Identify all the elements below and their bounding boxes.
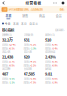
staticText: 日环比 <box>23 60 29 63</box>
staticText: 510 <box>45 37 51 43</box>
staticText: -1.1% <box>9 81 15 84</box>
staticText: 退货金额 <box>2 67 10 70</box>
staticText: 周同比 <box>2 81 8 84</box>
button[interactable]: Back <box>0 0 9 6</box>
staticText: 周同比 <box>2 47 8 50</box>
staticText: +7.3% <box>30 81 36 84</box>
button[interactable]: 会员 <box>50 13 67 20</box>
button[interactable]: 销售额(元) <box>2 33 22 50</box>
staticText: 进店人数 <box>2 50 10 53</box>
staticText: +2.2% <box>30 64 36 67</box>
staticText: 周同比 <box>2 64 8 67</box>
staticText: 复购率 <box>45 67 51 70</box>
staticText: +6.9% <box>52 43 58 46</box>
staticText: 周同比 <box>45 47 51 50</box>
staticText: 周同比 <box>23 64 29 67</box>
button[interactable]: 指标说明 › <box>55 28 65 32</box>
staticText: +5.2% <box>30 43 36 46</box>
button[interactable]: 会员总数 <box>23 67 43 84</box>
staticText: 经营看板 <box>25 0 41 6</box>
button[interactable]: 日报 <box>0 6 67 13</box>
staticText: 日环比 <box>45 77 51 80</box>
button[interactable]: 退货金额 <box>2 67 22 84</box>
staticText: 客单价(元) <box>45 33 55 36</box>
staticText: 9.81 <box>45 71 52 77</box>
staticText: +0.8% <box>52 64 58 67</box>
staticText: 销售 <box>22 14 28 18</box>
staticText: 会员 <box>56 14 62 18</box>
staticText: 47,585 <box>23 71 34 77</box>
staticText: +8.1% <box>9 47 15 50</box>
staticText: 日环比 <box>23 43 29 46</box>
staticText: 指标说明 › <box>55 28 65 32</box>
button[interactable]: 销售 <box>17 13 34 20</box>
staticText: 21,438 <box>2 54 13 60</box>
staticText: +9.5% <box>9 64 15 67</box>
staticText: 商品 <box>39 14 45 18</box>
staticText: +3.4% <box>52 47 58 50</box>
staticText: 631 <box>23 37 29 43</box>
button[interactable]: Close <box>59 0 67 6</box>
staticText: 周同比 <box>23 47 29 50</box>
staticText: 成交转化率 <box>45 50 55 53</box>
staticText: +1.9% <box>52 81 58 84</box>
button[interactable]: 成交人数 <box>23 50 43 67</box>
button[interactable]: 成交转化率 <box>45 50 65 67</box>
staticText: +1.8% <box>30 77 36 80</box>
staticText: 周同比 <box>23 81 29 84</box>
staticText: 今日 <box>5 22 11 25</box>
staticText: +2.7% <box>9 60 15 63</box>
staticText: 自定义 <box>29 22 38 25</box>
button[interactable]: 复购率 <box>45 67 65 84</box>
staticText: 9月7日经营数据已更新，点击查看详情 <box>8 8 42 11</box>
button[interactable]: 订单量(单) <box>23 33 43 50</box>
staticText: +0.6% <box>52 77 58 80</box>
staticText: 日环比 <box>45 43 51 46</box>
button[interactable]: 商品 <box>33 13 50 20</box>
staticText: 日报 <box>2 8 6 11</box>
staticText: 销售额(元) <box>2 33 12 36</box>
staticText: 订单量(单) <box>23 33 33 36</box>
staticText: 查看 › <box>59 8 65 11</box>
staticText: 日环比 <box>2 77 8 80</box>
button[interactable]: More <box>51 0 59 6</box>
staticText: 核心指标 <box>2 28 14 32</box>
staticText: 32.2万 <box>2 37 13 43</box>
staticText: +4.1% <box>30 60 36 63</box>
staticText: 487 <box>2 71 8 77</box>
staticText: 日环比 <box>2 60 8 63</box>
staticText: +12.4% <box>9 43 16 46</box>
staticText: 成交人数 <box>23 50 31 53</box>
staticText: 总览 <box>5 14 11 18</box>
staticText: 日环比 <box>45 60 51 63</box>
staticText: 本周 <box>13 22 19 25</box>
button[interactable]: 总览 <box>0 13 17 20</box>
button[interactable]: 客单价(元) <box>45 33 65 50</box>
staticText: 本月 <box>21 22 27 25</box>
staticText: 周同比 <box>45 81 51 84</box>
staticText: +0.3% <box>52 60 58 63</box>
staticText: 日环比 <box>23 77 29 80</box>
staticText: 周同比 <box>45 64 51 67</box>
staticText: -0.5% <box>9 77 15 80</box>
staticText: 620 <box>23 54 29 60</box>
staticText: 2.43% <box>45 54 56 60</box>
staticText: 日环比 <box>2 43 8 46</box>
button[interactable]: 进店人数 <box>2 50 22 67</box>
staticText: 会员总数 <box>23 67 31 70</box>
staticText: -1.3% <box>30 47 36 50</box>
